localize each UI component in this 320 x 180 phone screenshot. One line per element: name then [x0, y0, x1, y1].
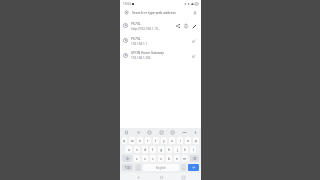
staticText: 13:54	[123, 2, 131, 6]
button[interactable]: ,	[135, 164, 141, 171]
button[interactable]: x	[142, 155, 148, 162]
staticText: 192.168.1.254	[131, 56, 151, 60]
staticText: GPON Home Gateway	[131, 51, 164, 55]
staticText: l	[193, 147, 194, 152]
staticText: Search or type web address	[132, 10, 191, 15]
staticText: .	[183, 166, 184, 170]
staticText: i	[180, 138, 181, 143]
staticText: a	[128, 147, 130, 152]
button[interactable]: a	[125, 146, 132, 153]
button[interactable]: Shift	[122, 155, 132, 162]
button[interactable]: o	[185, 137, 191, 144]
button[interactable]: P670L	[120, 33, 201, 48]
button[interactable]: l	[190, 146, 196, 153]
button[interactable]: Settings	[135, 129, 141, 135]
button[interactable]: v	[158, 155, 164, 162]
staticText: d	[144, 147, 147, 152]
staticText: n	[176, 156, 179, 161]
button[interactable]: GIF	[146, 129, 152, 135]
staticText: x	[144, 156, 146, 161]
button[interactable]: c	[150, 155, 156, 162]
staticText: p	[195, 138, 198, 143]
button[interactable]: Insert suggestion	[190, 52, 198, 60]
button[interactable]: z	[134, 155, 140, 162]
staticText: u	[171, 138, 174, 143]
button[interactable]: More	[181, 129, 187, 135]
staticText: q	[123, 138, 126, 143]
staticText: c	[152, 156, 154, 161]
staticText: z	[136, 156, 138, 161]
staticText: http://192.168.1.1/l...	[131, 27, 161, 31]
button[interactable]: Home	[157, 174, 165, 180]
button[interactable]: Site settings	[123, 9, 130, 16]
staticText: t	[155, 138, 157, 143]
button[interactable]: Clipboard	[123, 129, 129, 135]
button[interactable]: n	[174, 155, 180, 162]
button[interactable]: ?123	[122, 164, 133, 171]
button[interactable]: b	[166, 155, 172, 162]
button[interactable]: h	[166, 146, 172, 153]
button[interactable]: i	[177, 137, 183, 144]
button[interactable]: Go	[188, 164, 199, 171]
staticText: m	[183, 156, 187, 161]
staticText: e	[139, 138, 141, 143]
button[interactable]: Insert suggestion	[190, 37, 198, 45]
staticText: o	[187, 138, 190, 143]
button[interactable]: j	[174, 146, 180, 153]
button[interactable]: Translate	[169, 129, 175, 135]
button[interactable]: Voice search	[191, 9, 198, 16]
button[interactable]: m	[182, 155, 188, 162]
button[interactable]: u	[169, 137, 175, 144]
button[interactable]: r	[145, 137, 151, 144]
staticText: j	[177, 147, 178, 152]
staticText: h	[168, 147, 171, 152]
button[interactable]: y	[161, 137, 167, 144]
button[interactable]: Sticker	[158, 129, 164, 135]
staticText: b	[168, 156, 171, 161]
button[interactable]: g	[158, 146, 164, 153]
staticText: g	[160, 147, 163, 152]
button[interactable]: p	[193, 137, 199, 144]
staticText: P670L	[131, 36, 141, 41]
button[interactable]: f	[150, 146, 156, 153]
staticText: English	[156, 166, 166, 170]
staticText: P670L	[131, 21, 141, 26]
button[interactable]: Site settings	[120, 7, 201, 18]
staticText: s	[136, 147, 138, 152]
button[interactable]: Copy	[182, 22, 190, 30]
button[interactable]: Back	[134, 174, 142, 180]
staticText: v	[160, 156, 162, 161]
button[interactable]: d	[142, 146, 148, 153]
button[interactable]: P670L	[120, 18, 201, 33]
staticText: r	[147, 138, 149, 143]
button[interactable]: s	[134, 146, 140, 153]
button[interactable]: e	[137, 137, 143, 144]
button[interactable]: k	[182, 146, 188, 153]
button[interactable]: English	[143, 164, 179, 171]
staticText: f	[152, 147, 154, 152]
button[interactable]: Voice	[192, 129, 198, 135]
button[interactable]: GPON Home Gateway	[120, 48, 201, 63]
staticText: y	[163, 138, 165, 143]
staticText: ,	[138, 166, 139, 170]
staticText: k	[184, 147, 186, 152]
staticText: ?123	[125, 166, 131, 170]
button[interactable]: Recents	[179, 174, 187, 180]
button[interactable]: Edit	[190, 22, 198, 30]
button[interactable]: w	[129, 137, 135, 144]
staticText: 192.168.1.1	[131, 42, 148, 46]
button[interactable]: Backspace	[190, 155, 199, 162]
button[interactable]: q	[122, 137, 127, 144]
button[interactable]: t	[153, 137, 159, 144]
staticText: w	[131, 138, 134, 143]
button[interactable]: Share	[174, 22, 182, 30]
button[interactable]: .	[181, 164, 186, 171]
